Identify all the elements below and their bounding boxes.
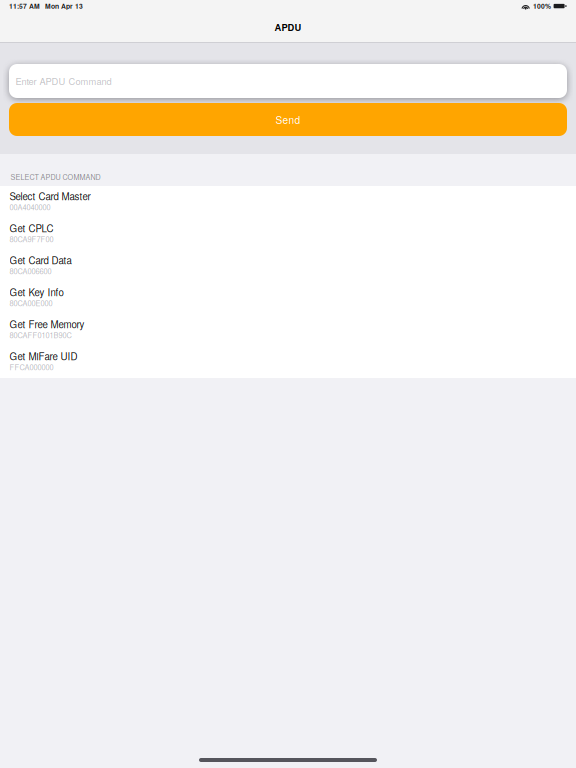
staticText: Get CPLC <box>9 221 53 235</box>
button[interactable]: Get CPLC <box>0 218 576 250</box>
button[interactable]: Enter APDU Command <box>0 64 576 98</box>
staticText: 80CA00E000 <box>9 298 52 308</box>
staticText: Enter APDU Command <box>15 74 111 88</box>
button[interactable]: Get MiFare UID <box>0 346 576 378</box>
staticText: Get Key Info <box>9 285 63 299</box>
staticText: Get Card Data <box>9 253 71 267</box>
staticText: 00A4040000 <box>9 202 50 212</box>
button[interactable]: Get Card Data <box>0 250 576 282</box>
staticText: 80CA006600 <box>9 266 51 276</box>
staticText: Get MiFare UID <box>9 349 77 363</box>
button[interactable]: Get Free Memory <box>0 314 576 346</box>
staticText: 80CA9F7F00 <box>9 234 53 244</box>
staticText: Mon Apr 13 <box>45 1 83 11</box>
staticText: 100% <box>533 1 551 11</box>
button[interactable]: Send <box>0 103 576 136</box>
button[interactable]: Select Card Master <box>0 186 576 218</box>
staticText: Get Free Memory <box>9 317 84 331</box>
staticText: 80CAFF0101B90C <box>9 330 71 340</box>
staticText: FFCA000000 <box>9 362 53 372</box>
staticText: Select Card Master <box>9 189 90 203</box>
staticText: 11:57 AM <box>9 1 40 11</box>
staticText: Send <box>275 112 300 127</box>
staticText: APDU <box>274 21 301 34</box>
button[interactable]: Get Key Info <box>0 282 576 314</box>
staticText: SELECT APDU COMMAND <box>10 172 100 182</box>
